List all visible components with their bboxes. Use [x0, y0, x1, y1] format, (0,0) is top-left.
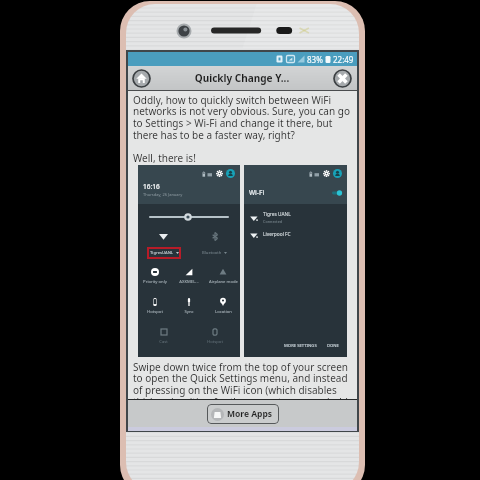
staticText: 16:16 [143, 182, 160, 191]
staticText: Priority only [143, 279, 167, 285]
button[interactable]: Tigres UANL [250, 209, 347, 226]
staticText: DONE [327, 343, 339, 349]
button[interactable]: Priority only [138, 264, 172, 294]
staticText: Location [215, 309, 232, 315]
staticText: Tigres UANL [263, 211, 291, 218]
staticText: 22:49 [333, 54, 354, 65]
staticText: Wi-Fi [249, 188, 265, 197]
staticText: Hotspot [147, 309, 163, 315]
button[interactable]: Location [206, 294, 240, 324]
button[interactable]: Liverpool FC [250, 226, 347, 243]
staticText: TigresUANL [150, 250, 174, 256]
staticText: 83% [307, 54, 323, 65]
button[interactable]: More Apps [207, 404, 279, 424]
staticText: Swipe down twice from the top of your sc… [133, 360, 352, 399]
button[interactable]: Bluetooth [189, 229, 240, 244]
button[interactable]: Home [132, 69, 151, 88]
staticText: Sync [184, 309, 194, 315]
staticText: AXKMEL... [179, 279, 199, 285]
staticText: Quickly Change Y... [151, 71, 333, 85]
button[interactable]: Hotspot [189, 324, 240, 354]
staticText: Airplane mode [209, 279, 238, 285]
staticText: MORE SETTINGS [284, 343, 317, 349]
staticText: More Apps [227, 408, 273, 420]
staticText: Bluetooth [202, 250, 222, 256]
staticText: Connected [263, 219, 283, 224]
button[interactable]: Wi-Fi [138, 229, 189, 244]
button[interactable]: Close [333, 69, 352, 88]
staticText: Liverpool FC [263, 231, 291, 238]
staticText: Thursday, 26 January [143, 192, 183, 197]
staticText: Oddly, how to quickly switch between WiF… [133, 93, 352, 142]
button[interactable]: Sync [172, 294, 206, 324]
button[interactable]: AXKMEL... [172, 264, 206, 294]
staticText: Hotspot [207, 339, 223, 345]
button[interactable]: Cast [138, 324, 189, 354]
button[interactable]: Hotspot [138, 294, 172, 324]
staticText: Cast [159, 339, 168, 345]
button[interactable]: Airplane mode [206, 264, 240, 294]
staticText: Well, there is! [133, 151, 196, 165]
